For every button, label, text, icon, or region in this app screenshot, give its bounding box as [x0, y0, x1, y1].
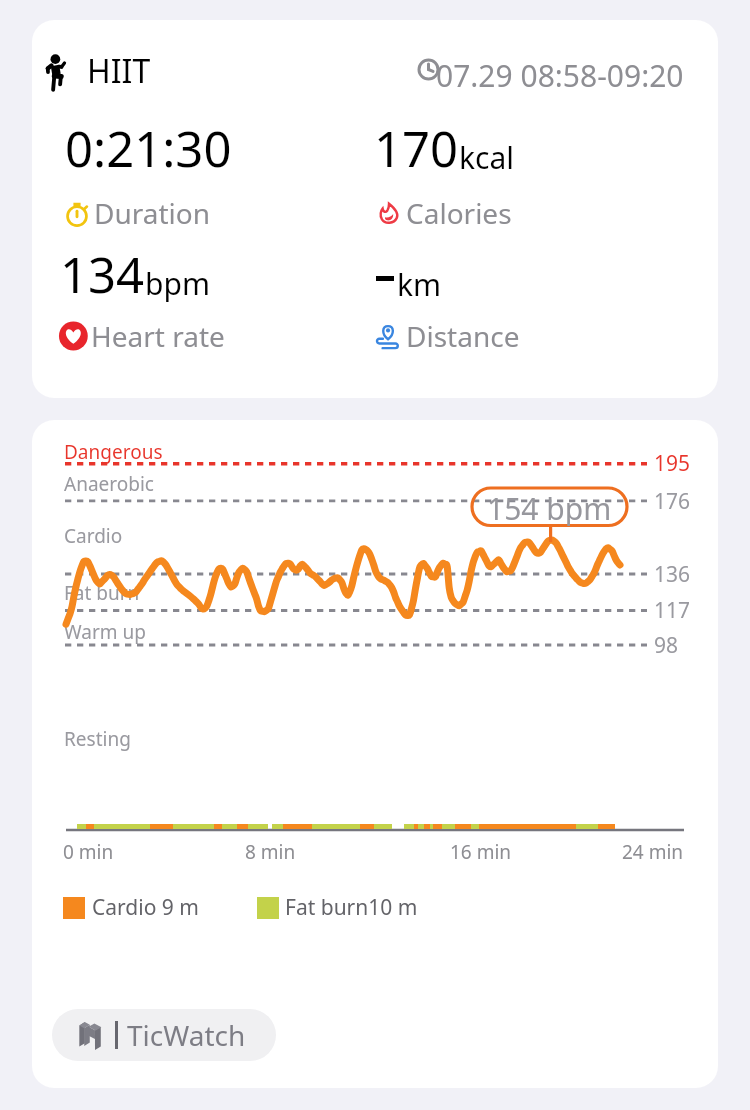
staticText: Calories [406, 194, 512, 232]
staticText: 176 [654, 487, 691, 516]
staticText: HIIT [87, 49, 151, 93]
button[interactable]: TicWatch logo [52, 1009, 276, 1061]
other: Workout time range [416, 57, 441, 82]
staticText: 170 [374, 115, 459, 182]
button[interactable]: Running workout [32, 20, 718, 398]
staticText: 0 min [63, 839, 114, 865]
staticText: 98 [654, 631, 679, 660]
other: TicWatch logo [77, 1018, 106, 1052]
button[interactable]: Dangerous [32, 420, 718, 1088]
staticText: 16 min [450, 839, 512, 865]
staticText: 154 bpm [487, 488, 612, 526]
other: Running workout [44, 52, 69, 93]
staticText: Warm up [64, 619, 146, 645]
staticText: Distance [406, 317, 520, 355]
staticText: Duration [94, 194, 211, 232]
staticText: km [397, 264, 442, 305]
staticText: Fat burn [64, 580, 140, 606]
staticText: Anaerobic [64, 471, 154, 497]
staticText: 07.29 08:58-09:20 [436, 55, 684, 96]
staticText: Dangerous [64, 439, 163, 465]
staticText: 117 [654, 596, 691, 625]
staticText: Cardio 9 m [92, 893, 199, 922]
staticText: 136 [654, 560, 691, 589]
staticText: 8 min [245, 839, 296, 865]
staticText: 24 min [622, 839, 684, 865]
staticText: 195 [654, 449, 691, 478]
staticText: Fat burn10 m [285, 893, 418, 922]
staticText: bpm [145, 263, 210, 304]
staticText: 0:21:30 [65, 115, 232, 182]
staticText: kcal [459, 137, 514, 178]
staticText: Heart rate [91, 317, 225, 355]
staticText: 134 [60, 241, 145, 308]
staticText: Resting [64, 726, 131, 752]
staticText: TicWatch [127, 1016, 246, 1054]
staticText: Cardio [64, 523, 123, 549]
